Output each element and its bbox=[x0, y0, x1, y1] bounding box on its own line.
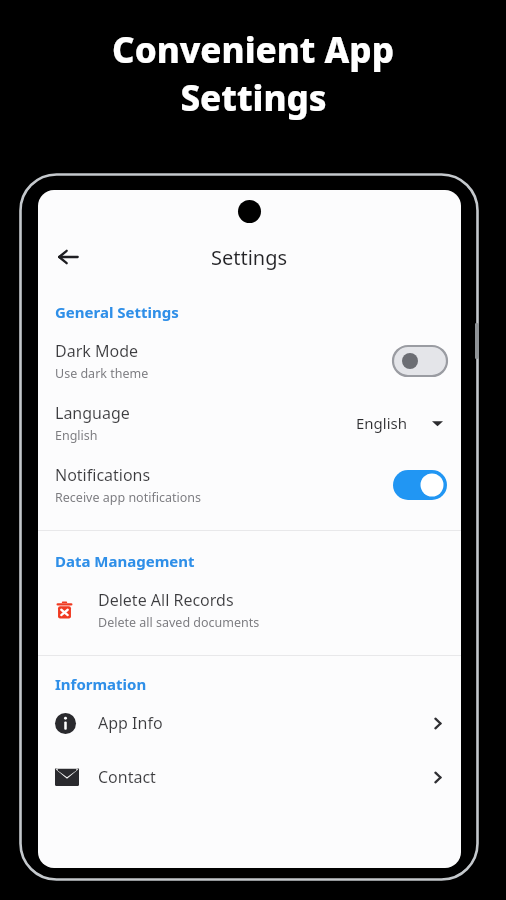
staticText: Contact bbox=[98, 766, 156, 788]
staticText: Data Management bbox=[55, 551, 195, 571]
staticText: Settings bbox=[211, 244, 288, 271]
staticText: Language bbox=[55, 402, 130, 424]
staticText: Notifications bbox=[55, 464, 151, 486]
button[interactable]: Delete All Records bbox=[38, 589, 461, 631]
button[interactable]: Contact bbox=[38, 766, 461, 788]
button[interactable]: Notifications bbox=[38, 464, 461, 506]
staticText: General Settings bbox=[55, 302, 179, 322]
staticText: Receive app notifications bbox=[55, 489, 201, 506]
button[interactable]: On bbox=[393, 470, 447, 500]
button[interactable]: Dark Mode bbox=[38, 340, 461, 382]
staticText: English bbox=[55, 427, 98, 444]
staticText: Delete All Records bbox=[98, 589, 234, 611]
button[interactable]: Back bbox=[46, 235, 90, 279]
button[interactable]: Language bbox=[38, 402, 461, 444]
button[interactable]: App Info bbox=[38, 712, 461, 734]
staticText: Information bbox=[55, 674, 147, 694]
staticText: Settings bbox=[180, 74, 327, 122]
staticText: Use dark theme bbox=[55, 365, 149, 382]
staticText: App Info bbox=[98, 712, 163, 734]
staticText: Dark Mode bbox=[55, 340, 139, 362]
staticText: English bbox=[356, 413, 408, 433]
button[interactable]: Off bbox=[393, 346, 447, 376]
staticText: Delete all saved documents bbox=[98, 614, 260, 631]
staticText: Convenient App bbox=[112, 26, 394, 74]
